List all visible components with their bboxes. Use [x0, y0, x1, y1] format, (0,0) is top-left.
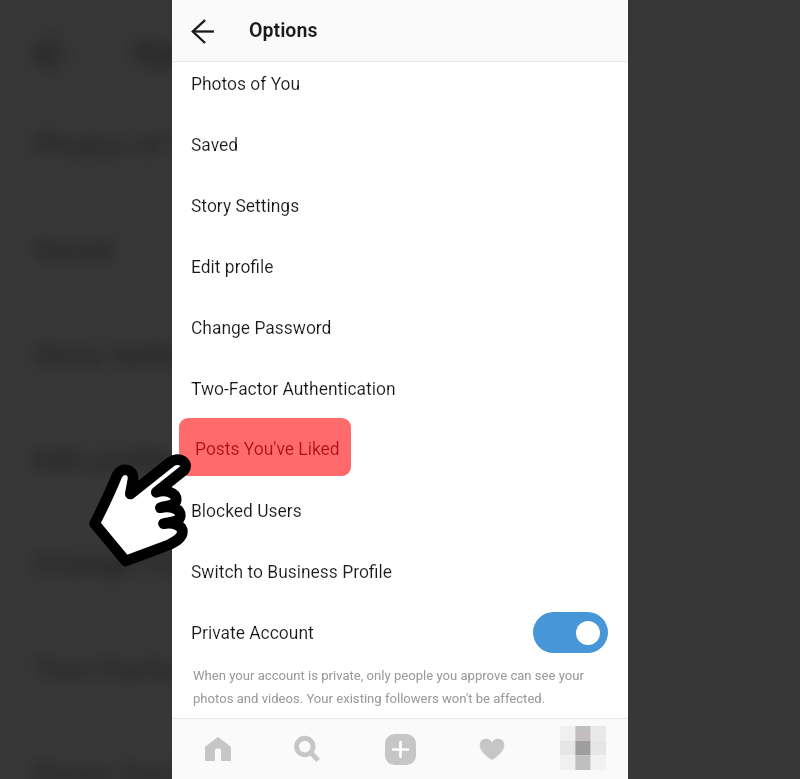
staticText: Options — [132, 33, 251, 72]
staticText: Two-Factor Authentication — [191, 379, 396, 399]
button[interactable]: Saved — [0, 196, 784, 301]
button[interactable]: New post — [355, 719, 446, 779]
button[interactable]: Photos of You — [172, 53, 628, 114]
other: Tap pointer — [89, 456, 191, 566]
button[interactable]: Profile — [537, 719, 628, 779]
button[interactable]: Blocked Users — [172, 480, 628, 541]
button[interactable]: Home — [172, 719, 263, 779]
staticText: Change Password — [33, 547, 275, 581]
staticText: Saved — [191, 135, 239, 155]
button[interactable]: Activity — [446, 719, 537, 779]
button[interactable]: Two-Factor Authentication — [172, 358, 628, 419]
button[interactable]: Posts You've Liked — [0, 721, 784, 779]
button[interactable]: Photos of You — [0, 91, 784, 196]
button[interactable]: Back — [179, 7, 227, 55]
button[interactable]: Story Settings — [172, 175, 628, 236]
staticText: Edit profile — [33, 442, 177, 476]
staticText: Photos of You — [33, 127, 222, 162]
button[interactable]: Switch to Business Profile — [172, 541, 628, 602]
staticText: When your account is private, only peopl… — [193, 668, 608, 706]
button[interactable]: Change Password — [0, 511, 784, 616]
staticText: Photos of You — [191, 74, 301, 94]
staticText: Story Settings — [191, 196, 300, 216]
staticText: Story Settings — [33, 337, 222, 371]
button[interactable]: Edit profile — [172, 236, 628, 297]
staticText: Blocked Users — [191, 501, 302, 521]
button[interactable]: Posts You've Liked — [179, 418, 351, 476]
button[interactable]: Change Password — [172, 297, 628, 358]
button[interactable]: Private Account — [172, 602, 628, 663]
staticText: Switch to Business Profile — [191, 562, 393, 582]
staticText: Options — [249, 19, 318, 42]
staticText: Two-Factor Authentication — [33, 652, 390, 686]
staticText: Change Password — [191, 318, 332, 338]
button[interactable]: Saved — [172, 114, 628, 175]
button[interactable]: Edit profile — [0, 406, 784, 511]
staticText: Edit profile — [191, 257, 274, 277]
staticText: Posts You've Liked — [33, 757, 284, 779]
button[interactable]: Two-Factor Authentication — [0, 616, 784, 721]
staticText: Posts You've Liked — [195, 439, 340, 459]
button[interactable]: Story Settings — [0, 301, 784, 406]
staticText: Private Account — [191, 623, 533, 643]
button[interactable]: Search — [261, 719, 352, 779]
